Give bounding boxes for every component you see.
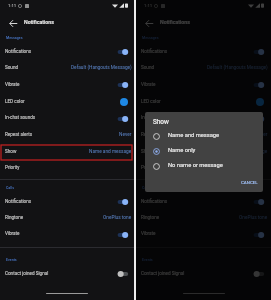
button[interactable] [145, 144, 263, 159]
button[interactable]: Toggle on [251, 113, 267, 125]
button[interactable]: Back [140, 14, 158, 32]
button[interactable] [0, 110, 134, 127]
staticText: Notifications [5, 49, 32, 54]
button[interactable]: Toggle on [115, 46, 131, 58]
staticText: Name and message [89, 149, 132, 155]
staticText: Sound [141, 65, 155, 70]
button[interactable] [136, 127, 271, 144]
button[interactable] [136, 44, 271, 61]
button[interactable] [136, 110, 271, 127]
button[interactable] [0, 144, 134, 161]
button[interactable] [0, 94, 134, 111]
staticText: In-chat sounds [5, 115, 36, 120]
staticText: Contact joined Signal [5, 271, 49, 276]
button[interactable] [0, 127, 134, 144]
button[interactable]: Toggle on [251, 229, 267, 241]
button[interactable]: Toggle on [115, 196, 131, 208]
button[interactable] [136, 160, 271, 177]
button[interactable] [0, 194, 134, 211]
staticText: Notifications [141, 199, 168, 204]
button[interactable] [145, 129, 263, 144]
button[interactable] [0, 60, 134, 77]
staticText: Ringtone [5, 215, 24, 220]
staticText: LED color [5, 99, 25, 104]
button[interactable] [145, 159, 263, 174]
staticText: Events [142, 258, 153, 262]
button[interactable] [0, 210, 134, 227]
staticText: Contact joined Signal [141, 271, 185, 276]
staticText: Name and message [168, 132, 220, 139]
button[interactable]: Toggle on [115, 79, 131, 91]
button[interactable]: Toggle on [251, 196, 267, 208]
staticText: Default (Hangouts Message) [71, 65, 132, 71]
staticText: Never [255, 132, 268, 138]
button[interactable]: Toggle on [115, 229, 131, 241]
staticText: LED color [141, 99, 161, 104]
staticText: Calls [142, 186, 150, 190]
staticText: Vibrate [141, 231, 156, 236]
button[interactable]: Toggle on [115, 113, 131, 125]
staticText: 1:11 [8, 3, 17, 8]
button[interactable] [136, 210, 271, 227]
staticText: Repeat alerts [141, 132, 169, 137]
button[interactable] [136, 226, 271, 243]
staticText: Priority [141, 165, 156, 170]
button[interactable]: Toggle on [251, 79, 267, 91]
staticText: In-chat sounds [141, 115, 172, 120]
staticText: Vibrate [141, 82, 156, 87]
button[interactable] [136, 94, 271, 111]
button[interactable] [136, 77, 271, 94]
staticText: Messages [6, 36, 23, 40]
button[interactable] [0, 77, 134, 94]
staticText: Show [141, 149, 153, 154]
button[interactable] [0, 266, 134, 283]
staticText: Notifications [5, 199, 32, 204]
staticText: Priority [5, 165, 20, 170]
button[interactable]: Toggle off [115, 268, 131, 280]
staticText: Sound [5, 65, 19, 70]
button[interactable]: Toggle off [251, 268, 267, 280]
staticText: Vibrate [5, 231, 20, 236]
staticText: Never [119, 132, 132, 138]
button[interactable]: Back [4, 14, 22, 32]
staticText: Calls [6, 186, 14, 190]
staticText: Messages [142, 36, 159, 40]
staticText: Name only [168, 147, 196, 154]
staticText: Default (Hangouts Message) [207, 65, 268, 71]
button[interactable] [136, 194, 271, 211]
staticText: Show [5, 149, 17, 154]
staticText: Name and message [225, 149, 268, 155]
button[interactable]: Toggle on [251, 46, 267, 58]
button[interactable] [136, 144, 271, 161]
staticText: Ringtone [141, 215, 160, 220]
staticText: Notifications [24, 19, 54, 25]
staticText: Vibrate [5, 82, 20, 87]
staticText: Events [6, 258, 17, 262]
button[interactable] [0, 226, 134, 243]
staticText: Notifications [141, 49, 168, 54]
staticText: OnePlus tone [103, 215, 132, 221]
staticText: OnePlus tone [239, 215, 268, 221]
staticText: 1:11 [144, 3, 153, 8]
staticText: Notifications [160, 19, 190, 25]
staticText: Repeat alerts [5, 132, 33, 137]
button[interactable] [0, 160, 134, 177]
staticText: Show [153, 118, 169, 126]
staticText: CANCEL [241, 180, 258, 185]
staticText: No name or message [168, 162, 223, 169]
button[interactable] [136, 60, 271, 77]
button[interactable] [136, 266, 271, 283]
button[interactable] [0, 44, 134, 61]
button[interactable]: CANCEL [240, 176, 258, 188]
